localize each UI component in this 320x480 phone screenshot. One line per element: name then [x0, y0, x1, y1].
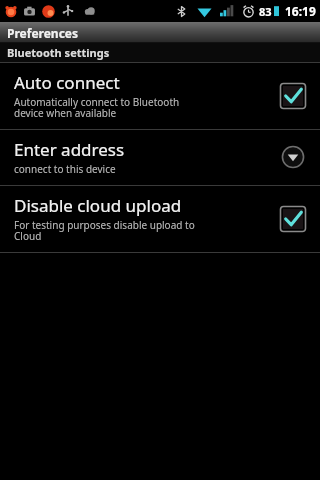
button[interactable]: Toggle checkbox — [278, 81, 308, 111]
button[interactable]: Open dropdown — [278, 142, 308, 172]
staticText: Automatically connect to Bluetooth devic… — [14, 95, 180, 120]
button[interactable]: Toggle checkbox — [278, 204, 308, 234]
button[interactable]: Disable cloud upload — [0, 186, 320, 252]
staticText: 16:19 — [285, 3, 316, 19]
staticText: Enter address — [14, 138, 125, 161]
button[interactable]: Enter address — [0, 130, 320, 185]
staticText: 83 — [259, 4, 272, 19]
staticText: Preferences — [7, 25, 79, 41]
staticText: For testing purposes disable upload to C… — [14, 218, 195, 243]
staticText: connect to this device — [14, 162, 116, 176]
staticText: Disable cloud upload — [14, 194, 182, 217]
button[interactable]: Auto connect — [0, 63, 320, 129]
staticText: Auto connect — [14, 71, 120, 94]
staticText: Bluetooth settings — [7, 45, 110, 60]
